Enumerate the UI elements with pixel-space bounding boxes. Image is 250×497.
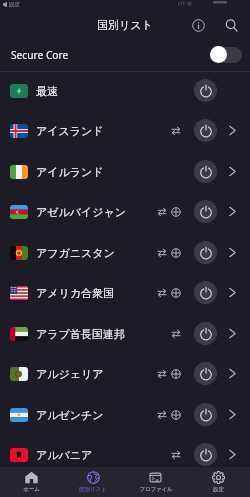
button[interactable]: Connect bbox=[194, 362, 217, 385]
staticText: プロファイル bbox=[139, 486, 173, 493]
button[interactable]: Search bbox=[220, 14, 242, 36]
button[interactable]: Connect bbox=[194, 443, 217, 466]
button[interactable]: アイルランド bbox=[0, 151, 250, 192]
staticText: アゼルバイジャン bbox=[36, 205, 127, 219]
staticText: 国別リスト bbox=[79, 486, 107, 493]
button[interactable]: アフガニスタン bbox=[0, 232, 250, 273]
button[interactable]: アルゼンチン bbox=[0, 394, 250, 435]
staticText: アイスランド bbox=[36, 124, 104, 138]
button[interactable]: 最速 bbox=[0, 70, 250, 111]
staticText: アメリカ合衆国 bbox=[36, 286, 115, 300]
button[interactable]: アメリカ合衆国 bbox=[0, 272, 250, 313]
staticText: 最速 bbox=[36, 84, 58, 98]
button[interactable]: Connect bbox=[194, 403, 217, 426]
button[interactable]: Connect bbox=[194, 322, 217, 345]
button[interactable]: Secure Core bbox=[0, 38, 250, 71]
button[interactable]: アルジェリア bbox=[0, 353, 250, 394]
button[interactable]: アゼルバイジャン bbox=[0, 191, 250, 232]
staticText: アイルランド bbox=[36, 165, 104, 179]
staticText: アフガニスタン bbox=[36, 246, 115, 260]
staticText: 設定 bbox=[213, 486, 224, 493]
button[interactable]: Connect bbox=[194, 200, 217, 223]
button[interactable]: アラブ首長国連邦 bbox=[0, 313, 250, 354]
button[interactable]: プロファイル bbox=[124, 467, 187, 497]
button[interactable]: Connect bbox=[194, 241, 217, 264]
button[interactable]: Connect bbox=[194, 160, 217, 183]
staticText: アルジェリア bbox=[36, 367, 104, 381]
staticText: 国別リスト bbox=[97, 18, 153, 32]
button[interactable]: Connect bbox=[194, 79, 217, 102]
staticText: Secure Core bbox=[11, 48, 69, 62]
button[interactable]: 国別リスト bbox=[62, 467, 124, 497]
staticText: 設定 bbox=[9, 1, 20, 8]
button[interactable]: Info bbox=[187, 14, 209, 36]
staticText: アラブ首長国連邦 bbox=[36, 327, 125, 341]
button[interactable]: 設定 bbox=[187, 467, 250, 497]
staticText: ホーム bbox=[23, 486, 40, 493]
staticText: アルゼンチン bbox=[36, 408, 104, 422]
button[interactable]: アイスランド bbox=[0, 110, 250, 151]
staticText: アルバニア bbox=[36, 448, 93, 462]
button[interactable]: ホーム bbox=[0, 467, 62, 497]
button[interactable]: アルバニア bbox=[0, 434, 250, 475]
button[interactable]: Connect bbox=[194, 281, 217, 304]
button[interactable]: Connect bbox=[194, 119, 217, 142]
